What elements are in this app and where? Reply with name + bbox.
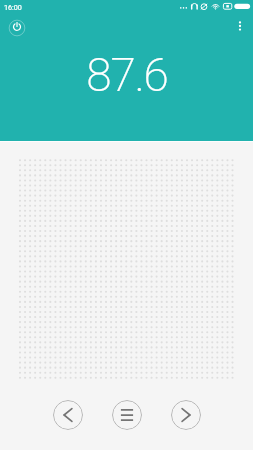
button[interactable]: More options xyxy=(227,13,253,39)
staticText: 87.6 xyxy=(86,48,168,102)
button[interactable]: Previous xyxy=(53,400,83,430)
button[interactable]: Next xyxy=(171,400,201,430)
button[interactable]: Station list xyxy=(112,400,142,430)
staticText: 16:00 xyxy=(4,3,22,11)
button[interactable]: Power xyxy=(5,16,29,40)
